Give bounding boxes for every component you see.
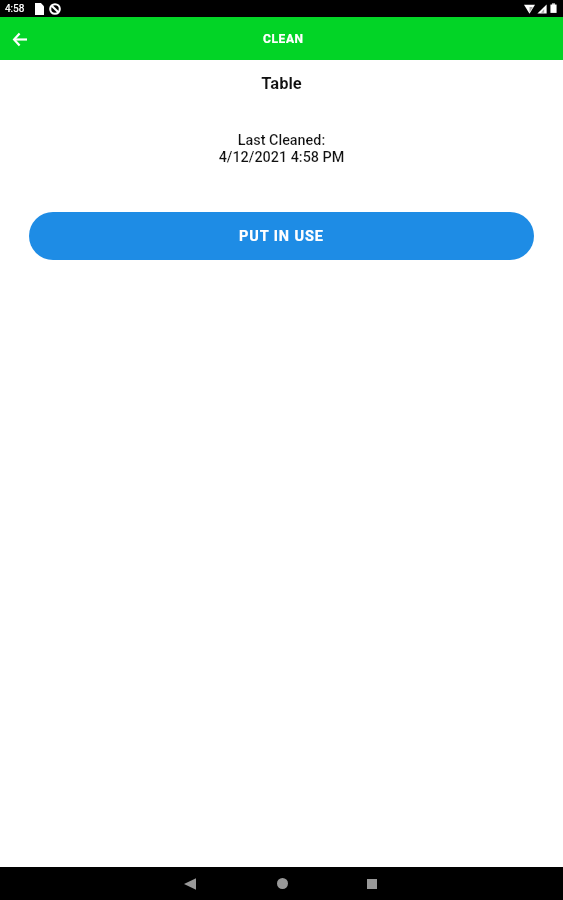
button[interactable]: PUT IN USE [29,212,534,260]
staticText: Last Cleaned: 4/12/2021 4:58 PM [0,132,563,166]
button[interactable]: Recent apps [348,867,396,900]
staticText: PUT IN USE [239,228,324,245]
button[interactable]: Home [258,867,306,900]
staticText: Table [0,74,563,93]
staticText: 4:58 [5,3,25,15]
staticText: CLEAN [263,32,304,46]
button[interactable]: Back [166,867,214,900]
button[interactable]: Back [3,22,37,56]
